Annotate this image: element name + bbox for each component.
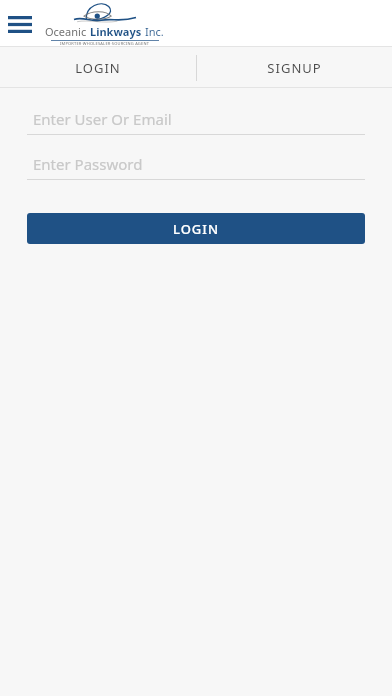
staticText: Enter User Or Email [33,109,172,129]
button[interactable]: LOGIN [27,213,365,244]
button[interactable]: Enter User Or Email [27,104,365,135]
staticText: Linkways [90,24,145,39]
staticText: Enter Password [33,154,143,174]
staticText: SIGNUP [267,59,322,77]
staticText: IMPORTER·WHOLESALER·SOURCING AGENT [60,41,150,46]
button[interactable]: Oceanic Linkways Inc. logo [45,1,164,46]
button[interactable]: Enter Password [27,149,365,180]
staticText: Inc. [145,24,164,39]
button[interactable]: SIGNUP [196,47,392,88]
button[interactable]: Open navigation menu [4,8,36,40]
staticText: LOGIN [75,59,121,77]
button[interactable]: LOGIN [0,47,196,88]
staticText: Oceanic [45,24,90,39]
staticText: LOGIN [173,220,220,238]
